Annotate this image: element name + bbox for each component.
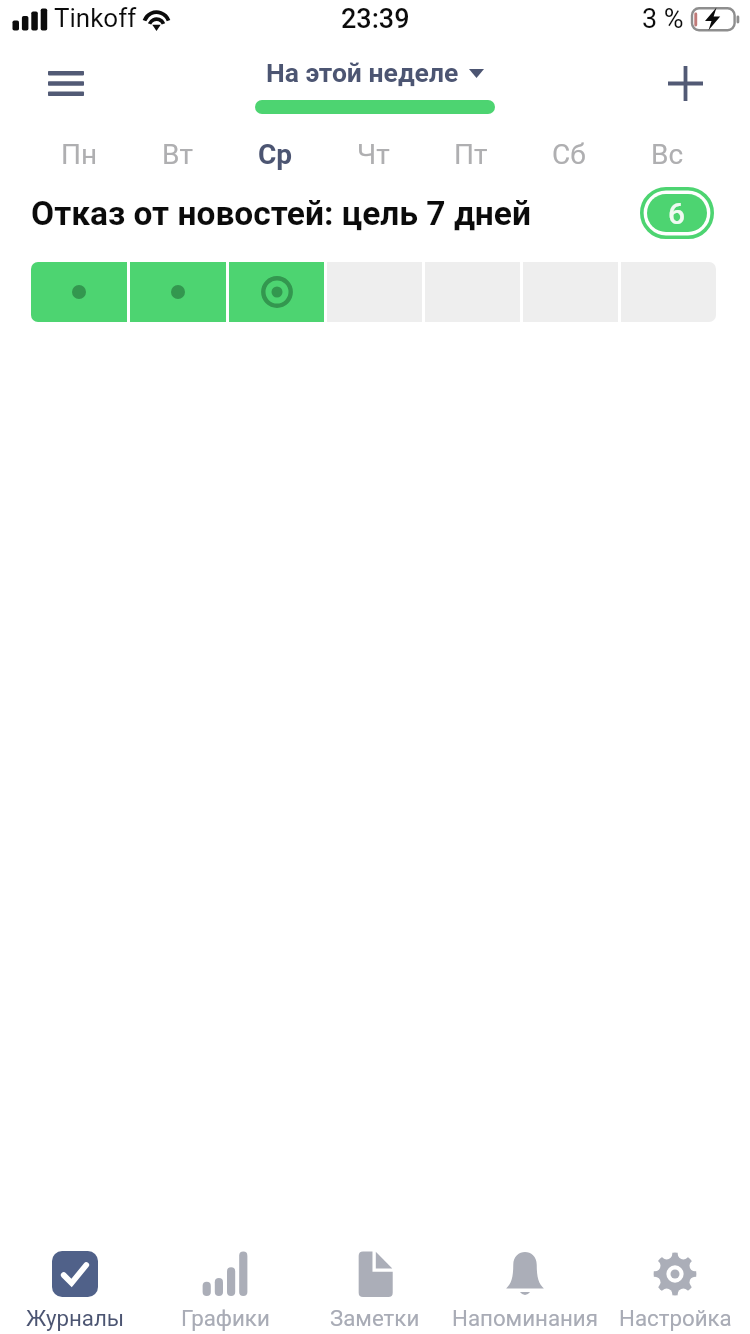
staticText: 3 % <box>642 3 684 35</box>
staticText: Сб <box>552 138 586 171</box>
button[interactable]: Вс <box>618 126 716 182</box>
button[interactable]: Пн <box>31 126 128 182</box>
button[interactable]: Ср <box>226 126 324 182</box>
button[interactable]: Напоминания <box>450 1234 600 1334</box>
staticText: На этой неделе <box>266 57 459 88</box>
staticText: Отказ от новостей: цель 7 дней <box>31 194 642 233</box>
button[interactable]: На этой неделе <box>250 57 500 119</box>
button[interactable]: Day ${i + 1} completed <box>130 262 226 322</box>
staticText: Чт <box>357 138 390 171</box>
button[interactable]: Журналы <box>0 1234 150 1334</box>
staticText: Пт <box>454 138 488 171</box>
staticText: 6 <box>668 196 686 231</box>
staticText: Заметки <box>330 1305 420 1331</box>
staticText: Ср <box>258 138 293 171</box>
staticText: Настройка <box>619 1305 732 1331</box>
button[interactable]: Day ${i + 1} completed <box>229 262 324 322</box>
button[interactable]: Чт <box>324 126 422 182</box>
button[interactable]: Настройка <box>600 1234 750 1334</box>
button[interactable]: Streak: 6 days <box>640 187 714 239</box>
button[interactable]: Заметки <box>300 1234 450 1334</box>
button[interactable]: Add <box>645 52 725 114</box>
staticText: 23:39 <box>341 3 410 35</box>
staticText: Вс <box>651 138 684 171</box>
button[interactable]: Day ${i + 1} completed <box>31 262 127 322</box>
button[interactable]: Menu <box>22 52 110 114</box>
staticText: Tinkoff <box>54 3 137 33</box>
staticText: Журналы <box>26 1305 125 1331</box>
staticText: Графики <box>181 1305 270 1331</box>
staticText: Пн <box>61 138 98 171</box>
button[interactable]: Пт <box>422 126 520 182</box>
staticText: Напоминания <box>452 1305 598 1331</box>
button[interactable]: Графики <box>150 1234 300 1334</box>
button[interactable]: Вт <box>128 126 226 182</box>
button[interactable]: Сб <box>520 126 618 182</box>
staticText: Вт <box>162 138 193 171</box>
